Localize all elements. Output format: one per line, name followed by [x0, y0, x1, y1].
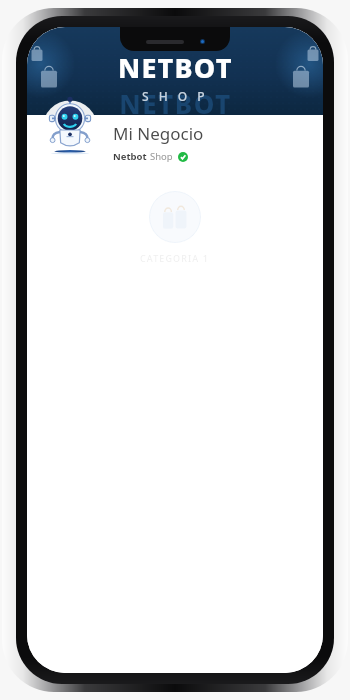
staticText: Mi Negocio — [113, 122, 204, 145]
staticText: S H O P — [142, 88, 209, 104]
staticText: CATEGORIA 1 — [140, 252, 210, 264]
staticText: Shop — [150, 150, 173, 163]
staticText: NETBOT — [119, 86, 232, 121]
other: Verified account — [178, 152, 188, 162]
button[interactable]: CATEGORIA 1 — [140, 191, 210, 264]
button[interactable]: Netbot robot avatar — [41, 115, 323, 173]
other: Netbot robot avatar — [41, 101, 99, 159]
staticText: Netbot — [113, 150, 147, 163]
staticText: NETBOT — [118, 49, 233, 86]
